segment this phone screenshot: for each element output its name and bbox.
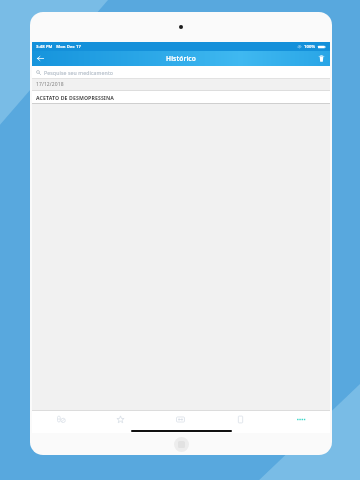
button[interactable]: More xyxy=(270,411,330,428)
button[interactable]: Scan xyxy=(150,411,210,428)
button[interactable]: Medications xyxy=(32,411,91,428)
staticText: Pesquise seu medicamento xyxy=(44,69,114,76)
button[interactable]: Pesquise seu medicamento xyxy=(32,66,330,78)
button[interactable]: Delete history xyxy=(316,53,327,64)
button[interactable]: Favorites xyxy=(91,411,150,428)
staticText: 17/12/2018 xyxy=(36,81,64,88)
button[interactable]: Notes xyxy=(210,411,270,428)
staticText: 100% xyxy=(304,44,316,50)
staticText: 3:48 PM Mon Dec 17 xyxy=(36,44,81,50)
staticText: Histórico xyxy=(32,54,330,63)
button[interactable]: ACETATO DE DESMOPRESSINA xyxy=(32,91,330,103)
staticText: ACETATO DE DESMOPRESSINA xyxy=(36,94,114,101)
button[interactable]: Back xyxy=(35,53,46,64)
